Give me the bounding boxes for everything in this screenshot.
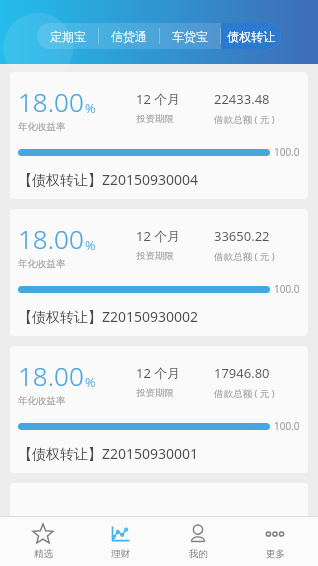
- staticText: 12 个月: [136, 364, 181, 382]
- staticText: 100.0: [274, 282, 300, 296]
- staticText: 【债权转让】Z20150930004: [18, 170, 199, 189]
- button[interactable]: 18.00: [10, 72, 308, 199]
- button[interactable]: 信贷通: [99, 23, 159, 49]
- staticText: 33650.22: [214, 227, 270, 245]
- staticText: %: [85, 236, 96, 254]
- button[interactable]: 理财: [85, 516, 155, 566]
- button[interactable]: 18.00: [10, 209, 308, 336]
- staticText: 车贷宝: [172, 29, 208, 44]
- button[interactable]: 我的: [163, 516, 233, 566]
- staticText: %: [85, 99, 96, 117]
- staticText: 借款总额 ( 元 ): [214, 250, 275, 263]
- staticText: 18.00: [18, 221, 84, 256]
- staticText: 借款总额 ( 元 ): [214, 113, 275, 126]
- staticText: 年化收益率: [18, 121, 66, 133]
- staticText: 借款总额 ( 元 ): [214, 387, 275, 400]
- button[interactable]: 车贷宝: [160, 23, 220, 49]
- staticText: 12 个月: [136, 227, 181, 245]
- staticText: 更多: [266, 548, 285, 560]
- staticText: 年化收益率: [18, 395, 66, 407]
- staticText: 18.00: [18, 84, 84, 119]
- button[interactable]: 更多: [240, 516, 310, 566]
- staticText: %: [85, 373, 96, 391]
- staticText: 17946.80: [214, 364, 270, 382]
- staticText: 信贷通: [111, 29, 147, 44]
- staticText: 我的: [189, 548, 208, 560]
- staticText: 理财: [111, 548, 130, 560]
- staticText: 投资期限: [136, 250, 174, 262]
- staticText: 投资期限: [136, 113, 174, 125]
- staticText: 年化收益率: [18, 258, 66, 270]
- staticText: 精选: [34, 548, 53, 560]
- staticText: 【债权转让】Z20150930001: [18, 444, 199, 463]
- button[interactable]: 债权转让: [221, 23, 281, 49]
- staticText: 18.00: [18, 358, 84, 393]
- button[interactable]: 18.00: [10, 346, 308, 473]
- button[interactable]: 定期宝: [37, 23, 98, 49]
- staticText: 【债权转让】Z20150930002: [18, 307, 199, 326]
- staticText: 债权转让: [227, 29, 275, 44]
- staticText: 定期宝: [50, 29, 86, 44]
- button[interactable]: 精选: [8, 516, 78, 566]
- staticText: 100.0: [274, 419, 300, 433]
- staticText: 12 个月: [136, 90, 181, 108]
- staticText: 投资期限: [136, 387, 174, 399]
- staticText: 100.0: [274, 145, 300, 159]
- staticText: 22433.48: [214, 90, 270, 108]
